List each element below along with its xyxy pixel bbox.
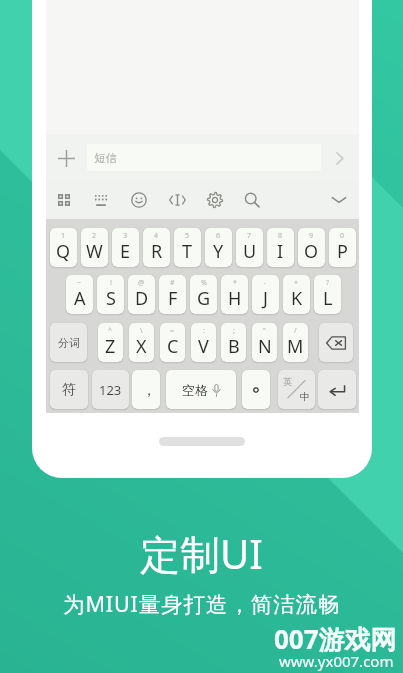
staticText: # xyxy=(170,278,175,288)
button[interactable]: Send xyxy=(322,141,356,175)
staticText: ! xyxy=(110,278,112,288)
staticText: 6 xyxy=(216,231,221,241)
button[interactable]: 8 xyxy=(267,228,294,267)
button[interactable]: Edit text xyxy=(160,183,194,217)
staticText: 7 xyxy=(247,231,252,241)
staticText: 5 xyxy=(185,231,190,241)
staticText: % xyxy=(201,278,207,288)
staticText: V xyxy=(198,334,209,359)
staticText: E xyxy=(120,239,131,264)
button[interactable]: 分词 xyxy=(50,323,87,362)
staticText: 中 xyxy=(300,390,310,403)
button[interactable]: ， xyxy=(132,370,160,409)
staticText: ， xyxy=(142,382,156,400)
staticText: O xyxy=(304,239,319,264)
staticText: / xyxy=(294,326,297,336)
button[interactable]: - xyxy=(252,275,279,314)
button[interactable]: + xyxy=(283,275,310,314)
staticText: 123 xyxy=(99,381,122,399)
staticText: S xyxy=(106,286,116,311)
button[interactable]: Add attachment xyxy=(49,141,83,175)
staticText: 3 xyxy=(123,231,128,241)
staticText: 符 xyxy=(62,381,76,399)
staticText: 定制UI xyxy=(140,526,263,581)
button[interactable]: ! xyxy=(97,275,124,314)
button[interactable]: = xyxy=(160,323,185,362)
button[interactable]: 短信 xyxy=(87,144,321,171)
staticText: H xyxy=(228,286,242,311)
staticText: K xyxy=(291,286,303,311)
staticText: J xyxy=(263,286,268,311)
staticText: ~ xyxy=(77,278,82,288)
staticText: L xyxy=(323,286,333,311)
button[interactable] xyxy=(319,323,353,362)
staticText: ^ xyxy=(108,326,113,336)
staticText: 英 xyxy=(283,376,292,387)
button[interactable]: # xyxy=(159,275,186,314)
button[interactable]: Keyboard layouts xyxy=(47,183,81,217)
button[interactable]: ^ xyxy=(98,323,123,362)
staticText: www.yx007.com xyxy=(279,651,394,671)
staticText: 2 xyxy=(92,231,97,241)
staticText: W xyxy=(86,239,103,264)
button[interactable]: 符 xyxy=(50,370,88,409)
staticText: = xyxy=(170,326,175,336)
staticText: ; xyxy=(233,326,235,336)
button[interactable]: " xyxy=(252,323,277,362)
staticText: 8 xyxy=(278,231,283,241)
button[interactable]: 5 xyxy=(174,228,201,267)
button[interactable] xyxy=(318,370,356,409)
button[interactable]: Hide keyboard xyxy=(322,183,356,217)
button[interactable]: 英 xyxy=(278,370,315,409)
button[interactable]: / xyxy=(283,323,308,362)
button[interactable]: 4 xyxy=(143,228,170,267)
staticText: G xyxy=(197,286,211,311)
staticText: B xyxy=(228,334,240,359)
button[interactable]: 空格 xyxy=(166,370,236,409)
staticText: D xyxy=(135,286,149,311)
staticText: : xyxy=(203,326,205,336)
staticText: \ xyxy=(140,326,143,336)
staticText: I xyxy=(277,239,284,264)
button[interactable]: \ xyxy=(129,323,154,362)
staticText: 为MIUI量身打造，简洁流畅 xyxy=(63,589,341,618)
button[interactable]: % xyxy=(190,275,217,314)
staticText: C xyxy=(167,334,179,359)
button[interactable] xyxy=(242,370,270,409)
staticText: 分词 xyxy=(58,336,80,350)
button[interactable]: Settings xyxy=(198,183,232,217)
staticText: X xyxy=(136,334,147,359)
staticText: 0 xyxy=(340,231,345,241)
staticText: * xyxy=(233,278,237,288)
button[interactable]: ? xyxy=(314,275,341,314)
staticText: F xyxy=(168,286,178,311)
button[interactable]: 3 xyxy=(112,228,139,267)
staticText: 1 xyxy=(61,231,66,241)
button[interactable]: Emoji xyxy=(122,183,156,217)
staticText: 空格 xyxy=(182,382,208,398)
staticText: T xyxy=(182,239,193,264)
button[interactable]: 6 xyxy=(205,228,232,267)
button[interactable]: : xyxy=(191,323,216,362)
button[interactable]: Search xyxy=(235,183,269,217)
staticText: 007游戏网 xyxy=(274,621,397,657)
staticText: U xyxy=(243,239,257,264)
button[interactable]: @ xyxy=(128,275,155,314)
button[interactable]: ~ xyxy=(66,275,93,314)
button[interactable]: Keyboard xyxy=(84,183,118,217)
button[interactable]: 0 xyxy=(329,228,356,267)
staticText: 短信 xyxy=(94,151,117,165)
button[interactable]: ; xyxy=(221,323,246,362)
button[interactable]: 7 xyxy=(236,228,263,267)
staticText: ? xyxy=(326,278,330,288)
staticText: " xyxy=(263,326,266,336)
button[interactable]: 9 xyxy=(298,228,325,267)
button[interactable]: * xyxy=(221,275,248,314)
staticText: + xyxy=(294,278,299,288)
button[interactable]: 123 xyxy=(92,370,129,409)
button[interactable]: 1 xyxy=(50,228,77,267)
staticText: - xyxy=(264,278,267,288)
button[interactable]: 2 xyxy=(81,228,108,267)
staticText: M xyxy=(287,334,304,359)
staticText: Z xyxy=(105,334,116,359)
